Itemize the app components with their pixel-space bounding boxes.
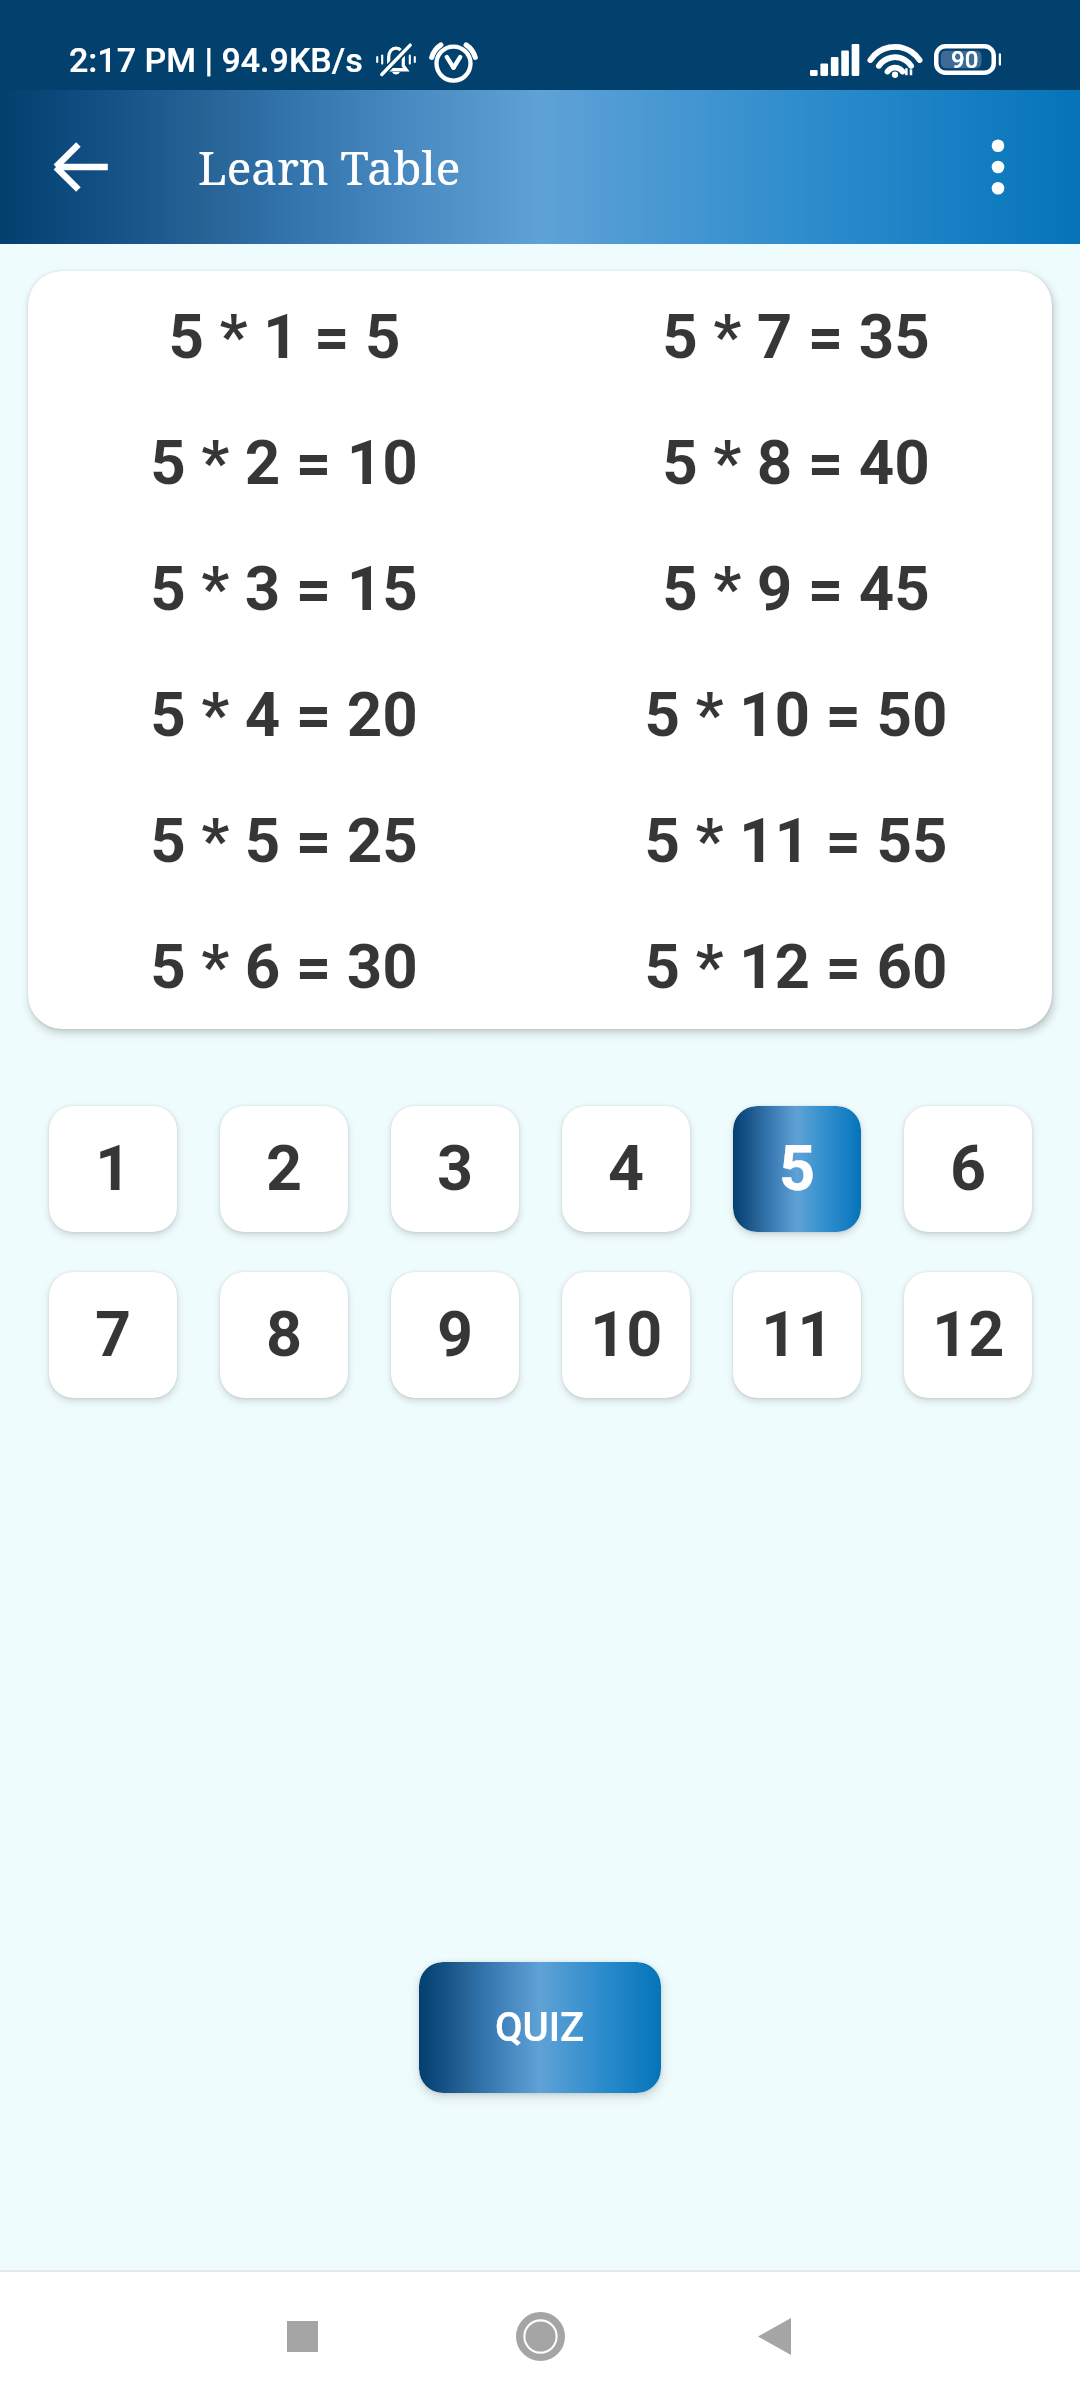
staticText: 3 [437, 1132, 474, 1206]
staticText: 4 [608, 1132, 645, 1206]
button[interactable]: 11 [733, 1272, 861, 1398]
staticText: 5 * 4 = 20 [150, 678, 418, 751]
staticText: 5 * 1 = 5 [168, 300, 401, 373]
staticText: 6 [950, 1132, 987, 1206]
button[interactable]: Back [22, 107, 142, 227]
staticText: 5 * 10 = 50 [644, 678, 948, 751]
button[interactable]: 5 * 8 = 40 [540, 399, 1052, 525]
button[interactable]: 10 [562, 1272, 690, 1398]
staticText: 9 [437, 1298, 474, 1372]
button[interactable]: Home [481, 2272, 599, 2400]
staticText: 5 * 6 = 30 [150, 930, 418, 1003]
staticText: 2 [266, 1132, 303, 1206]
button[interactable]: 5 * 6 = 30 [28, 903, 540, 1029]
button[interactable]: More options [938, 107, 1058, 227]
button[interactable]: 6 [904, 1106, 1032, 1232]
button[interactable]: 2 [220, 1106, 348, 1232]
staticText: 10 [590, 1298, 663, 1372]
staticText: 5 * 3 = 15 [150, 552, 418, 625]
staticText: 11 [761, 1298, 834, 1372]
staticText: 5 [779, 1132, 816, 1206]
staticText: 5 * 9 = 45 [662, 552, 930, 625]
button[interactable]: 5 * 5 = 25 [28, 777, 540, 903]
button[interactable]: 9 [391, 1272, 519, 1398]
staticText: 5 * 5 = 25 [150, 804, 418, 877]
button[interactable]: 8 [220, 1272, 348, 1398]
button[interactable]: 5 * 1 = 5 [28, 274, 540, 399]
button[interactable]: 3 [391, 1106, 519, 1232]
button[interactable]: 5 * 9 = 45 [540, 525, 1052, 651]
staticText: 5 * 11 = 55 [644, 804, 948, 877]
button[interactable]: 5 * 11 = 55 [540, 777, 1052, 903]
button[interactable]: 5 * 3 = 15 [28, 525, 540, 651]
staticText: 5 * 2 = 10 [150, 426, 418, 499]
staticText: 1 [95, 1132, 132, 1206]
button[interactable]: 5 * 2 = 10 [28, 399, 540, 525]
staticText: 12 [932, 1298, 1005, 1372]
button[interactable]: 5 [733, 1106, 861, 1232]
staticText: QUIZ [495, 2004, 585, 2051]
button[interactable]: 5 * 4 = 20 [28, 651, 540, 777]
button[interactable]: 5 * 10 = 50 [540, 651, 1052, 777]
button[interactable]: Back [715, 2272, 833, 2400]
button[interactable]: 4 [562, 1106, 690, 1232]
button[interactable]: 5 * 12 = 60 [540, 903, 1052, 1029]
staticText: 2:17 PM | 94.9KB/s [69, 40, 363, 80]
staticText: 7 [95, 1298, 132, 1372]
staticText: Learn Table [198, 136, 461, 199]
staticText: 5 * 7 = 35 [662, 300, 930, 373]
staticText: 90 [951, 46, 979, 74]
button[interactable]: 5 * 7 = 35 [540, 274, 1052, 399]
button[interactable]: 7 [49, 1272, 177, 1398]
staticText: 5 * 8 = 40 [662, 426, 930, 499]
staticText: 5 * 12 = 60 [644, 930, 948, 1003]
button[interactable]: 1 [49, 1106, 177, 1232]
button[interactable]: 12 [904, 1272, 1032, 1398]
button[interactable]: Recents [243, 2272, 361, 2400]
button[interactable]: QUIZ [419, 1962, 661, 2093]
staticText: 8 [266, 1298, 303, 1372]
